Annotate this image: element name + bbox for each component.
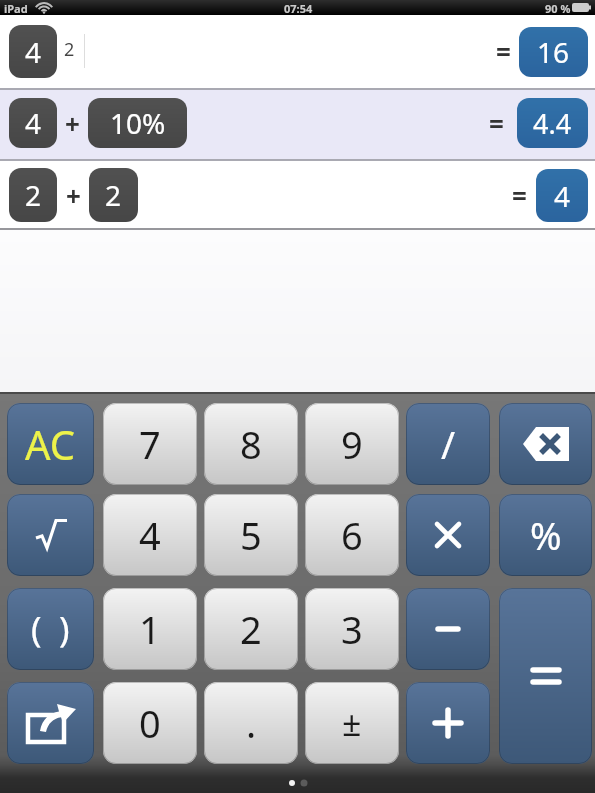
button[interactable]: 2	[204, 588, 298, 670]
staticText: +	[66, 178, 81, 213]
staticText: .	[246, 697, 257, 749]
button[interactable]	[406, 588, 490, 670]
button[interactable]: 9	[305, 403, 399, 485]
button[interactable]: .	[204, 682, 298, 764]
staticText: AC	[25, 417, 76, 471]
staticText: %	[530, 509, 562, 561]
button[interactable]: 4	[536, 169, 588, 222]
staticText: 0	[139, 697, 161, 749]
staticText: 2	[240, 603, 262, 655]
button[interactable]: 4	[9, 98, 57, 148]
staticText: 8	[240, 418, 262, 470]
staticText: 6	[341, 509, 363, 561]
button[interactable]: 4	[103, 494, 197, 576]
button[interactable]	[499, 588, 592, 764]
button[interactable]: 1	[103, 588, 197, 670]
staticText: 16	[537, 33, 570, 71]
button[interactable]: 0	[103, 682, 197, 764]
staticText: 7	[139, 418, 161, 470]
staticText: 4.4	[533, 105, 572, 142]
button[interactable]: 2	[89, 168, 138, 222]
button[interactable]	[406, 494, 490, 576]
staticText: 1	[139, 603, 161, 655]
button[interactable]: %	[499, 494, 592, 576]
button[interactable]: AC	[7, 403, 94, 485]
staticText: iPad	[4, 1, 28, 16]
staticText: 4	[25, 33, 42, 71]
staticText: ±	[342, 700, 362, 746]
staticText: =	[496, 34, 511, 69]
staticText: 2	[64, 37, 75, 62]
staticText: 4	[554, 177, 571, 215]
button[interactable]: ±	[305, 682, 399, 764]
staticText: 4	[139, 509, 161, 561]
button[interactable]	[7, 682, 94, 764]
staticText: 3	[341, 603, 363, 655]
staticText: +	[65, 106, 80, 141]
staticText: 07:54	[284, 1, 313, 16]
button[interactable]: 4	[9, 25, 57, 78]
button[interactable]: 16	[519, 27, 588, 77]
button[interactable]	[406, 682, 490, 764]
staticText: 90 %	[545, 1, 571, 16]
button[interactable]: 5	[204, 494, 298, 576]
button[interactable]: /	[406, 403, 490, 485]
staticText: =	[489, 106, 504, 141]
button[interactable]: 6	[305, 494, 399, 576]
staticText: 5	[240, 509, 262, 561]
staticText: 10%	[110, 104, 166, 142]
staticText: 9	[341, 418, 363, 470]
button[interactable]: 4.4	[517, 98, 588, 148]
staticText: ( )	[31, 605, 70, 653]
staticText: =	[512, 178, 527, 213]
button[interactable]	[7, 494, 94, 576]
staticText: 4	[25, 104, 42, 142]
button[interactable]: 7	[103, 403, 197, 485]
staticText: /	[441, 418, 456, 470]
button[interactable]	[499, 403, 592, 485]
staticText: 2	[25, 176, 42, 214]
button[interactable]: ( )	[7, 588, 94, 670]
button[interactable]: 8	[204, 403, 298, 485]
button[interactable]: 2	[9, 168, 57, 222]
staticText: 2	[105, 176, 122, 214]
button[interactable]: 3	[305, 588, 399, 670]
button[interactable]: 10%	[88, 98, 187, 148]
